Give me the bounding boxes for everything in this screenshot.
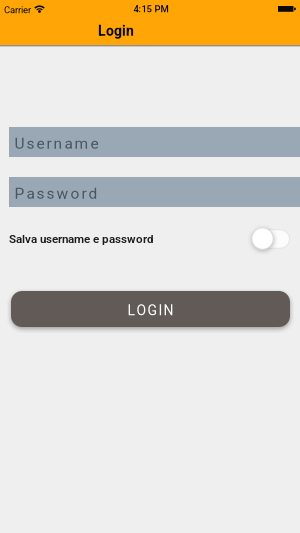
staticText: Salva username e password [9, 232, 154, 246]
staticText: U s e r n a m e [14, 134, 98, 153]
button[interactable]: Password [0, 177, 300, 207]
button[interactable]: L O G I N [11, 291, 290, 327]
button[interactable]: Salva username e password [251, 228, 290, 250]
staticText: 4:15 PM [133, 3, 168, 14]
staticText: Carrier [4, 4, 31, 15]
staticText: P a s s w o r d [14, 184, 97, 203]
staticText: Login [98, 23, 134, 39]
staticText: L O G I N [127, 302, 173, 319]
button[interactable]: Username [0, 127, 300, 157]
